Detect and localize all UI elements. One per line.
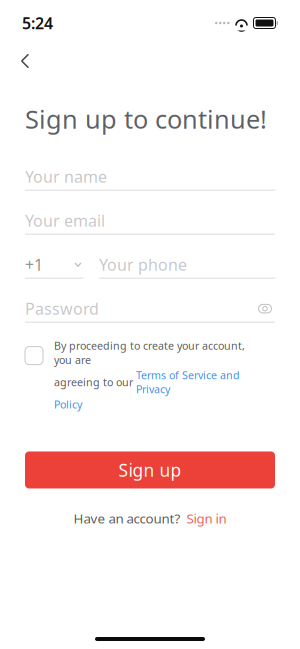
staticText: 5:24: [22, 12, 53, 34]
button[interactable]: Sign up: [25, 451, 275, 488]
button[interactable]: Sign in: [186, 509, 226, 527]
staticText: agreeing to our: [54, 375, 136, 389]
staticText: Policy: [54, 397, 82, 411]
button[interactable]: Show password: [255, 301, 275, 317]
staticText: Sign in: [186, 509, 226, 527]
button[interactable]: Policy: [54, 397, 82, 411]
staticText: +1: [25, 254, 43, 275]
staticText: Your name: [25, 166, 107, 187]
staticText: Have an account?: [73, 509, 180, 527]
staticText: Password: [25, 298, 99, 319]
staticText: Sign up: [118, 458, 181, 481]
staticText: Sign up to continue!: [25, 102, 267, 136]
staticText: Your phone: [99, 254, 187, 275]
button[interactable]: Back: [8, 44, 42, 78]
staticText: By proceeding to create your account, yo…: [54, 339, 245, 367]
staticText: Your email: [25, 210, 105, 231]
button[interactable]: Agree to terms: [25, 339, 43, 365]
button[interactable]: Terms of Service and Privacy: [136, 368, 240, 396]
button[interactable]: +1: [25, 252, 83, 279]
staticText: Terms of Service and Privacy: [136, 368, 240, 396]
